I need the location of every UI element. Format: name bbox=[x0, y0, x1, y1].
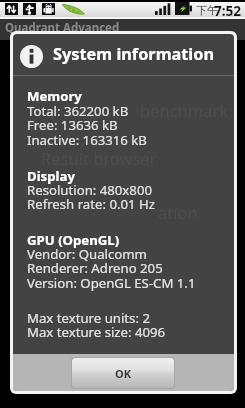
staticText: 下午 bbox=[196, 3, 218, 17]
staticText: Renderer: Adreno 205 bbox=[27, 259, 163, 277]
staticText: System information bbox=[53, 43, 215, 65]
staticText: 7:52 bbox=[214, 1, 242, 20]
staticText: Total: 362200 kB bbox=[27, 102, 129, 120]
staticText: Result browser bbox=[41, 147, 157, 169]
staticText: Max texture size: 4096 bbox=[27, 323, 166, 341]
staticText: ation bbox=[158, 201, 198, 223]
staticText: Quadrant Advanced bbox=[5, 20, 120, 36]
staticText: Version: OpenGL ES-CM 1.1 bbox=[27, 274, 196, 292]
staticText: Vendor: Qualcomm bbox=[27, 245, 147, 263]
staticText: Memory bbox=[27, 87, 82, 105]
staticText: Max texture units: 2 bbox=[27, 309, 150, 327]
staticText: GPU (OpenGL) bbox=[27, 231, 120, 249]
staticText: OK bbox=[115, 366, 132, 381]
staticText: Resolution: 480x800 bbox=[27, 181, 152, 199]
staticText: Display bbox=[27, 167, 75, 185]
staticText: benchmark bbox=[140, 99, 229, 121]
staticText: Refresh rate: 0.01 Hz bbox=[27, 195, 155, 213]
staticText: Inactive: 163316 kB bbox=[27, 131, 147, 149]
staticText: Free: 13636 kB bbox=[27, 116, 118, 134]
button[interactable]: OK bbox=[72, 358, 174, 388]
